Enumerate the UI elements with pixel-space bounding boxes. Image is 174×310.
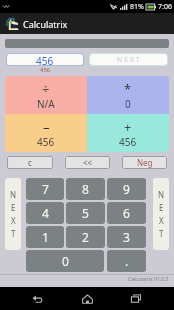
staticText: 456 [37, 135, 55, 149]
staticText: Neg [137, 157, 153, 168]
button[interactable]: 7 [26, 178, 64, 200]
staticText: 456 [40, 66, 51, 74]
staticText: T [159, 228, 164, 239]
staticText: 3 [123, 229, 130, 245]
button[interactable]: << [65, 156, 110, 169]
staticText: N [158, 189, 165, 200]
button[interactable]: Back [25, 287, 50, 310]
staticText: T [11, 228, 16, 239]
staticText: N [10, 189, 17, 200]
staticText: << [83, 157, 93, 168]
staticText: N/A [37, 97, 55, 111]
staticText: . [125, 253, 129, 269]
staticText: * [124, 80, 132, 98]
staticText: 9 [123, 181, 130, 197]
button[interactable]: 5 [66, 202, 105, 224]
staticText: Calculatrix V1.0.3 [128, 276, 169, 283]
button[interactable]: Next [5, 178, 21, 250]
button[interactable]: – [5, 114, 87, 152]
staticText: 2 [82, 229, 89, 245]
staticText: 0 [62, 253, 69, 269]
staticText: 4 [42, 205, 49, 221]
staticText: 456 [119, 135, 137, 149]
staticText: 1 [42, 229, 49, 245]
staticText: E [159, 202, 164, 213]
staticText: 7:06 [158, 2, 172, 12]
button[interactable]: . [107, 250, 146, 272]
button[interactable]: 9 [107, 178, 146, 200]
staticText: 8 [82, 181, 89, 197]
staticText: E [11, 202, 16, 213]
button[interactable]: 8 [66, 178, 105, 200]
staticText: + [124, 118, 132, 136]
button[interactable]: c [7, 156, 53, 169]
button[interactable]: ÷ [5, 76, 87, 114]
button[interactable]: N E X T [90, 54, 167, 65]
button[interactable]: 4 [26, 202, 64, 224]
staticText: N E X T [117, 55, 140, 65]
button[interactable]: 2 [66, 226, 105, 248]
staticText: 6 [123, 205, 130, 221]
button[interactable]: Next [153, 178, 169, 250]
staticText: 5 [82, 205, 89, 221]
staticText: c [28, 157, 32, 168]
staticText: Calculatrix [23, 18, 68, 30]
staticText: X [159, 215, 164, 226]
button[interactable]: 0 [26, 250, 104, 272]
staticText: 7 [42, 181, 49, 197]
staticText: 0 [125, 97, 131, 111]
button[interactable]: 3 [107, 226, 146, 248]
button[interactable]: Recents [124, 287, 149, 310]
button[interactable]: 456 [7, 54, 83, 65]
staticText: – [43, 118, 50, 136]
button[interactable]: Home [75, 287, 100, 310]
button[interactable]: * [87, 76, 169, 114]
staticText: X [11, 215, 16, 226]
button[interactable]: + [87, 114, 169, 152]
staticText: ÷ [42, 80, 50, 98]
button[interactable]: 1 [26, 226, 64, 248]
staticText: 81% [130, 2, 144, 12]
button[interactable]: Neg [122, 156, 167, 169]
button[interactable]: 6 [107, 202, 146, 224]
staticText: 456 [36, 54, 54, 65]
